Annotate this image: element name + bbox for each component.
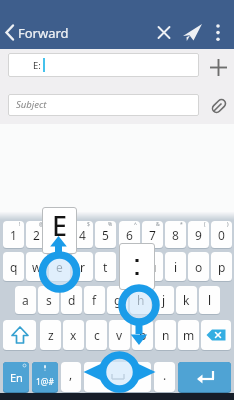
staticText: * (180, 221, 183, 228)
button[interactable]: Subject (8, 94, 199, 116)
staticText: & (156, 221, 160, 228)
button[interactable]: y (119, 252, 140, 282)
staticText: 7 (149, 227, 156, 243)
staticText: ^ (134, 221, 137, 228)
staticText: Forward (18, 24, 69, 42)
staticText: g (114, 292, 122, 308)
button[interactable]: u (142, 252, 163, 282)
button[interactable]: v (109, 320, 130, 351)
button[interactable]: r (72, 252, 93, 282)
button[interactable]: E: (8, 53, 199, 77)
staticText: 2 (33, 227, 40, 243)
button[interactable]: 9 (188, 221, 209, 249)
button[interactable]: 7 (142, 221, 163, 249)
staticText: b (139, 327, 147, 343)
button[interactable]: , (61, 362, 81, 393)
staticText: 8 (172, 227, 179, 243)
staticText: h (137, 292, 145, 308)
button[interactable]: j (153, 286, 174, 315)
staticText: @ (39, 221, 44, 228)
staticText: l (208, 292, 212, 308)
button[interactable]: c (86, 320, 107, 351)
button[interactable]: d (61, 286, 82, 315)
button[interactable]: 8 (165, 221, 186, 249)
button[interactable]: 5 (95, 221, 116, 249)
button[interactable]: q (3, 252, 24, 282)
button[interactable]: En (3, 362, 29, 393)
button[interactable]: l (199, 286, 220, 315)
staticText: c (94, 327, 100, 343)
staticText: , (69, 366, 73, 382)
staticText: u (149, 259, 157, 275)
button[interactable]: k (176, 286, 197, 315)
staticText: s (46, 292, 52, 308)
staticText: 0 (218, 227, 225, 243)
staticText: r (80, 259, 85, 275)
button[interactable]: a (15, 286, 36, 315)
staticText: ( (204, 221, 206, 228)
staticText: $ (87, 221, 90, 228)
staticText: t (103, 259, 108, 275)
staticText: q (10, 259, 18, 275)
button[interactable] (208, 57, 229, 78)
button[interactable] (201, 320, 231, 351)
button[interactable]: h (130, 286, 151, 315)
button[interactable]: p (211, 252, 232, 282)
button[interactable] (178, 362, 231, 393)
button[interactable]: 3 (49, 221, 70, 249)
staticText: d (68, 292, 76, 308)
button[interactable]: 0 (211, 221, 232, 249)
button[interactable] (209, 96, 229, 116)
button[interactable]: z (40, 320, 61, 351)
button[interactable]: e (49, 252, 70, 282)
staticText: k (183, 292, 190, 308)
button[interactable]: 4 (72, 221, 93, 249)
staticText: ) (227, 221, 229, 228)
staticText: x (70, 327, 77, 343)
staticText: 1@# (36, 376, 54, 388)
staticText: % (108, 221, 113, 228)
button[interactable]: Forward (0, 0, 234, 49)
button[interactable]: . (154, 362, 175, 393)
button[interactable]: n (155, 320, 176, 351)
button[interactable]: 6 (119, 221, 140, 249)
button[interactable] (3, 320, 36, 351)
button[interactable]: 2 (26, 221, 47, 249)
staticText: p (218, 259, 226, 275)
staticText: 9 (195, 227, 202, 243)
staticText: 6 (126, 227, 133, 243)
staticText: f (92, 292, 97, 308)
staticText: # (63, 221, 67, 228)
button[interactable]: b (132, 320, 153, 351)
staticText: E: (33, 59, 41, 72)
staticText: z (48, 327, 54, 343)
staticText: Subject (16, 98, 47, 111)
staticText: . (163, 367, 167, 383)
staticText: v (116, 327, 123, 343)
staticText: 3 (56, 227, 63, 243)
button[interactable]: w (26, 252, 47, 282)
button[interactable] (84, 362, 151, 393)
staticText: w (32, 259, 42, 275)
staticText: E (52, 207, 68, 244)
button[interactable]: g (107, 286, 128, 315)
staticText: ! (19, 221, 21, 228)
staticText: o (195, 259, 203, 275)
button[interactable]: x (63, 320, 84, 351)
button[interactable]: 1 (3, 221, 24, 249)
staticText: 4 (79, 227, 86, 243)
button[interactable]: m (178, 320, 199, 351)
staticText: i (174, 259, 178, 275)
button[interactable]: t (95, 252, 116, 282)
button[interactable]: s (38, 286, 59, 315)
button[interactable]: o (188, 252, 209, 282)
button[interactable]: i (165, 252, 186, 282)
staticText: j (162, 292, 166, 308)
staticText: 1 (10, 227, 17, 243)
staticText: n (162, 327, 170, 343)
staticText: a (22, 292, 29, 308)
button[interactable]: f (84, 286, 105, 315)
staticText: 5 (102, 227, 109, 243)
button[interactable]: 1@# (32, 362, 58, 393)
